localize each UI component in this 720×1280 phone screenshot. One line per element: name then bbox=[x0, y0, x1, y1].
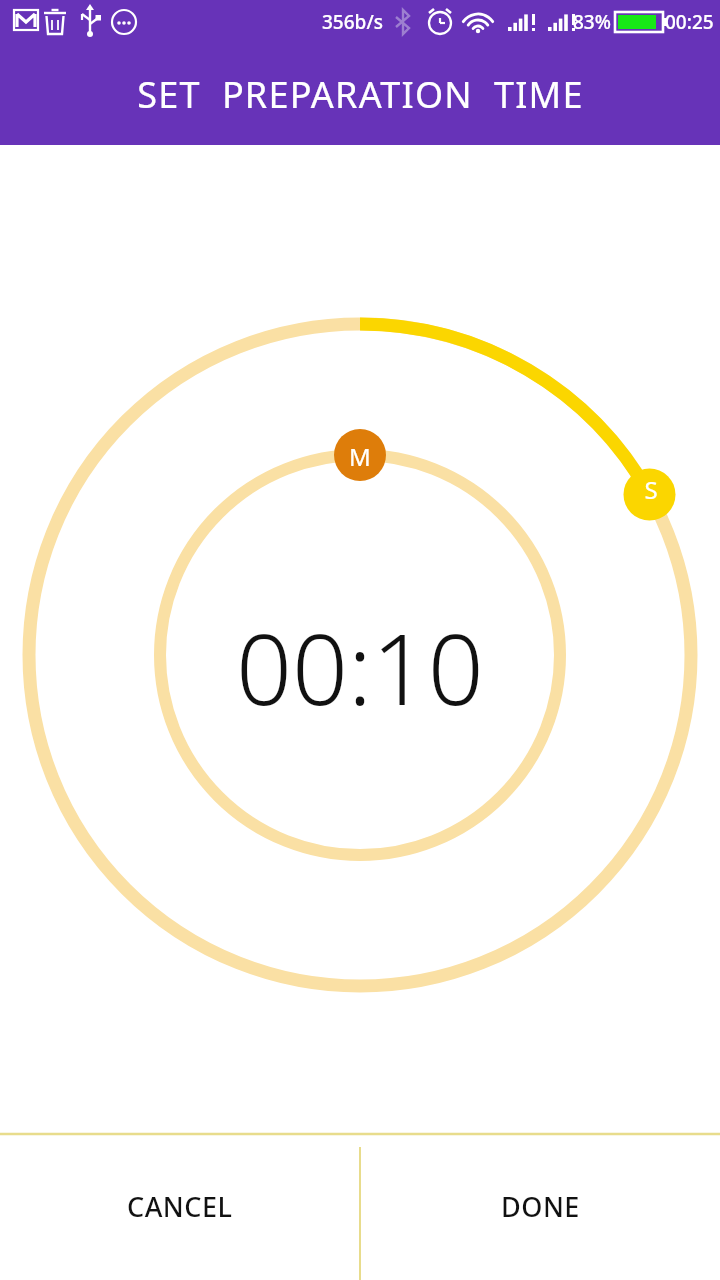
staticText: DONE bbox=[501, 1188, 580, 1225]
button[interactable]: DONE bbox=[360, 1133, 720, 1280]
staticText: 00:10 bbox=[236, 600, 484, 733]
staticText: 83% bbox=[573, 9, 611, 35]
staticText: CANCEL bbox=[127, 1188, 233, 1225]
button[interactable]: CANCEL bbox=[0, 1133, 360, 1280]
staticText: 356b/s bbox=[322, 9, 383, 35]
button[interactable]: 00:10 bbox=[236, 600, 484, 733]
button[interactable]: M bbox=[345, 440, 375, 470]
button[interactable]: S bbox=[637, 473, 665, 501]
staticText: SET PREPARATION TIME bbox=[137, 70, 584, 119]
staticText: 00:25 bbox=[665, 9, 714, 35]
